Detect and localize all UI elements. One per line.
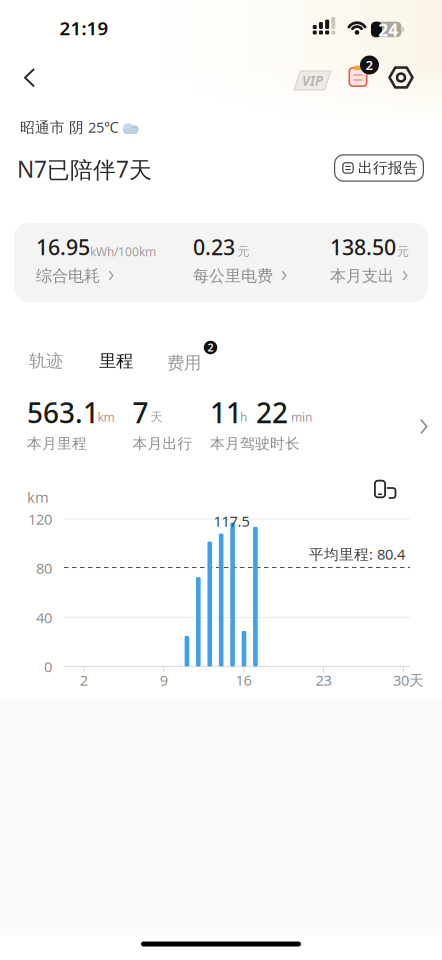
- staticText: 昭通市 阴 25℃: [20, 117, 119, 137]
- button[interactable]: 里程: [93, 344, 139, 378]
- staticText: VIP: [302, 72, 323, 89]
- staticText: 平均里程: 80.4: [309, 544, 405, 564]
- staticText: 2: [365, 56, 373, 74]
- button[interactable]: Settings: [382, 58, 420, 96]
- staticText: 综合电耗: [36, 266, 100, 286]
- button[interactable]: 138.50: [330, 223, 442, 289]
- staticText: 0.23: [193, 233, 235, 261]
- staticText: 费用: [167, 352, 201, 374]
- staticText: 天: [150, 410, 162, 424]
- staticText: 24: [378, 18, 398, 41]
- staticText: 本月驾驶时长: [210, 434, 300, 452]
- staticText: 本月支出: [330, 266, 394, 286]
- staticText: N7已陪伴7天: [17, 154, 152, 184]
- staticText: 2: [207, 340, 213, 354]
- staticText: 16.95: [36, 233, 90, 261]
- staticText: 元: [237, 244, 249, 259]
- staticText: km: [27, 487, 49, 507]
- staticText: 30天: [393, 670, 424, 690]
- staticText: 40: [36, 608, 52, 627]
- staticText: 138.50: [330, 233, 396, 261]
- button[interactable]: 出行报告: [334, 154, 424, 182]
- button[interactable]: 费用: [164, 341, 204, 377]
- staticText: 里程: [99, 350, 133, 372]
- staticText: kWh/100km: [90, 243, 156, 259]
- staticText: 0: [44, 657, 52, 676]
- staticText: km: [97, 409, 114, 425]
- staticText: 21:19: [59, 16, 108, 40]
- button[interactable]: VIP: [294, 71, 331, 90]
- staticText: 7: [132, 394, 148, 431]
- staticText: 11: [210, 394, 242, 431]
- staticText: 22: [256, 394, 288, 431]
- button[interactable]: Back: [14, 59, 46, 96]
- staticText: 本月出行: [132, 434, 192, 452]
- button[interactable]: Messages: [346, 58, 380, 92]
- staticText: 23: [315, 670, 331, 690]
- staticText: 每公里电费: [193, 266, 273, 286]
- button[interactable]: 16.95: [36, 223, 166, 289]
- button[interactable]: 轨迹: [23, 344, 69, 378]
- staticText: 元: [397, 244, 409, 259]
- staticText: min: [291, 409, 312, 425]
- button[interactable]: 563.1: [0, 393, 442, 459]
- staticText: 117.5: [213, 511, 249, 531]
- staticText: 563.1: [27, 394, 99, 431]
- staticText: 120: [28, 509, 52, 529]
- staticText: 9: [160, 670, 168, 690]
- button[interactable]: Rotate chart: [368, 473, 402, 504]
- staticText: 轨迹: [29, 350, 63, 372]
- staticText: 80: [36, 558, 52, 578]
- staticText: 2: [80, 670, 88, 690]
- staticText: h: [240, 409, 247, 425]
- staticText: 本月里程: [27, 434, 87, 452]
- staticText: 出行报告: [358, 159, 418, 177]
- button[interactable]: 0.23: [193, 223, 323, 289]
- staticText: 16: [236, 670, 252, 690]
